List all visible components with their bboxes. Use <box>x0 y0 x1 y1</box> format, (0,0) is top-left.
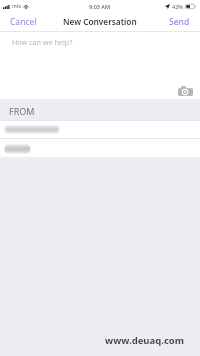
button[interactable]: Add photo <box>177 85 193 96</box>
staticText: Cancel <box>10 16 37 28</box>
staticText: How can we help? <box>12 37 73 47</box>
staticText: 9:03 AM <box>89 3 111 10</box>
staticText: Send <box>169 16 190 28</box>
button[interactable]: Send <box>159 13 200 31</box>
staticText: FROM <box>9 105 35 117</box>
staticText: New Conversation <box>63 16 137 27</box>
staticText: mts <box>12 3 21 10</box>
staticText: 42% <box>172 3 183 10</box>
button[interactable]: Message body <box>0 32 200 99</box>
staticText: www.deuaq.com <box>105 334 185 347</box>
button[interactable] <box>0 121 200 138</box>
button[interactable]: Cancel <box>0 13 47 31</box>
button[interactable] <box>0 139 200 157</box>
